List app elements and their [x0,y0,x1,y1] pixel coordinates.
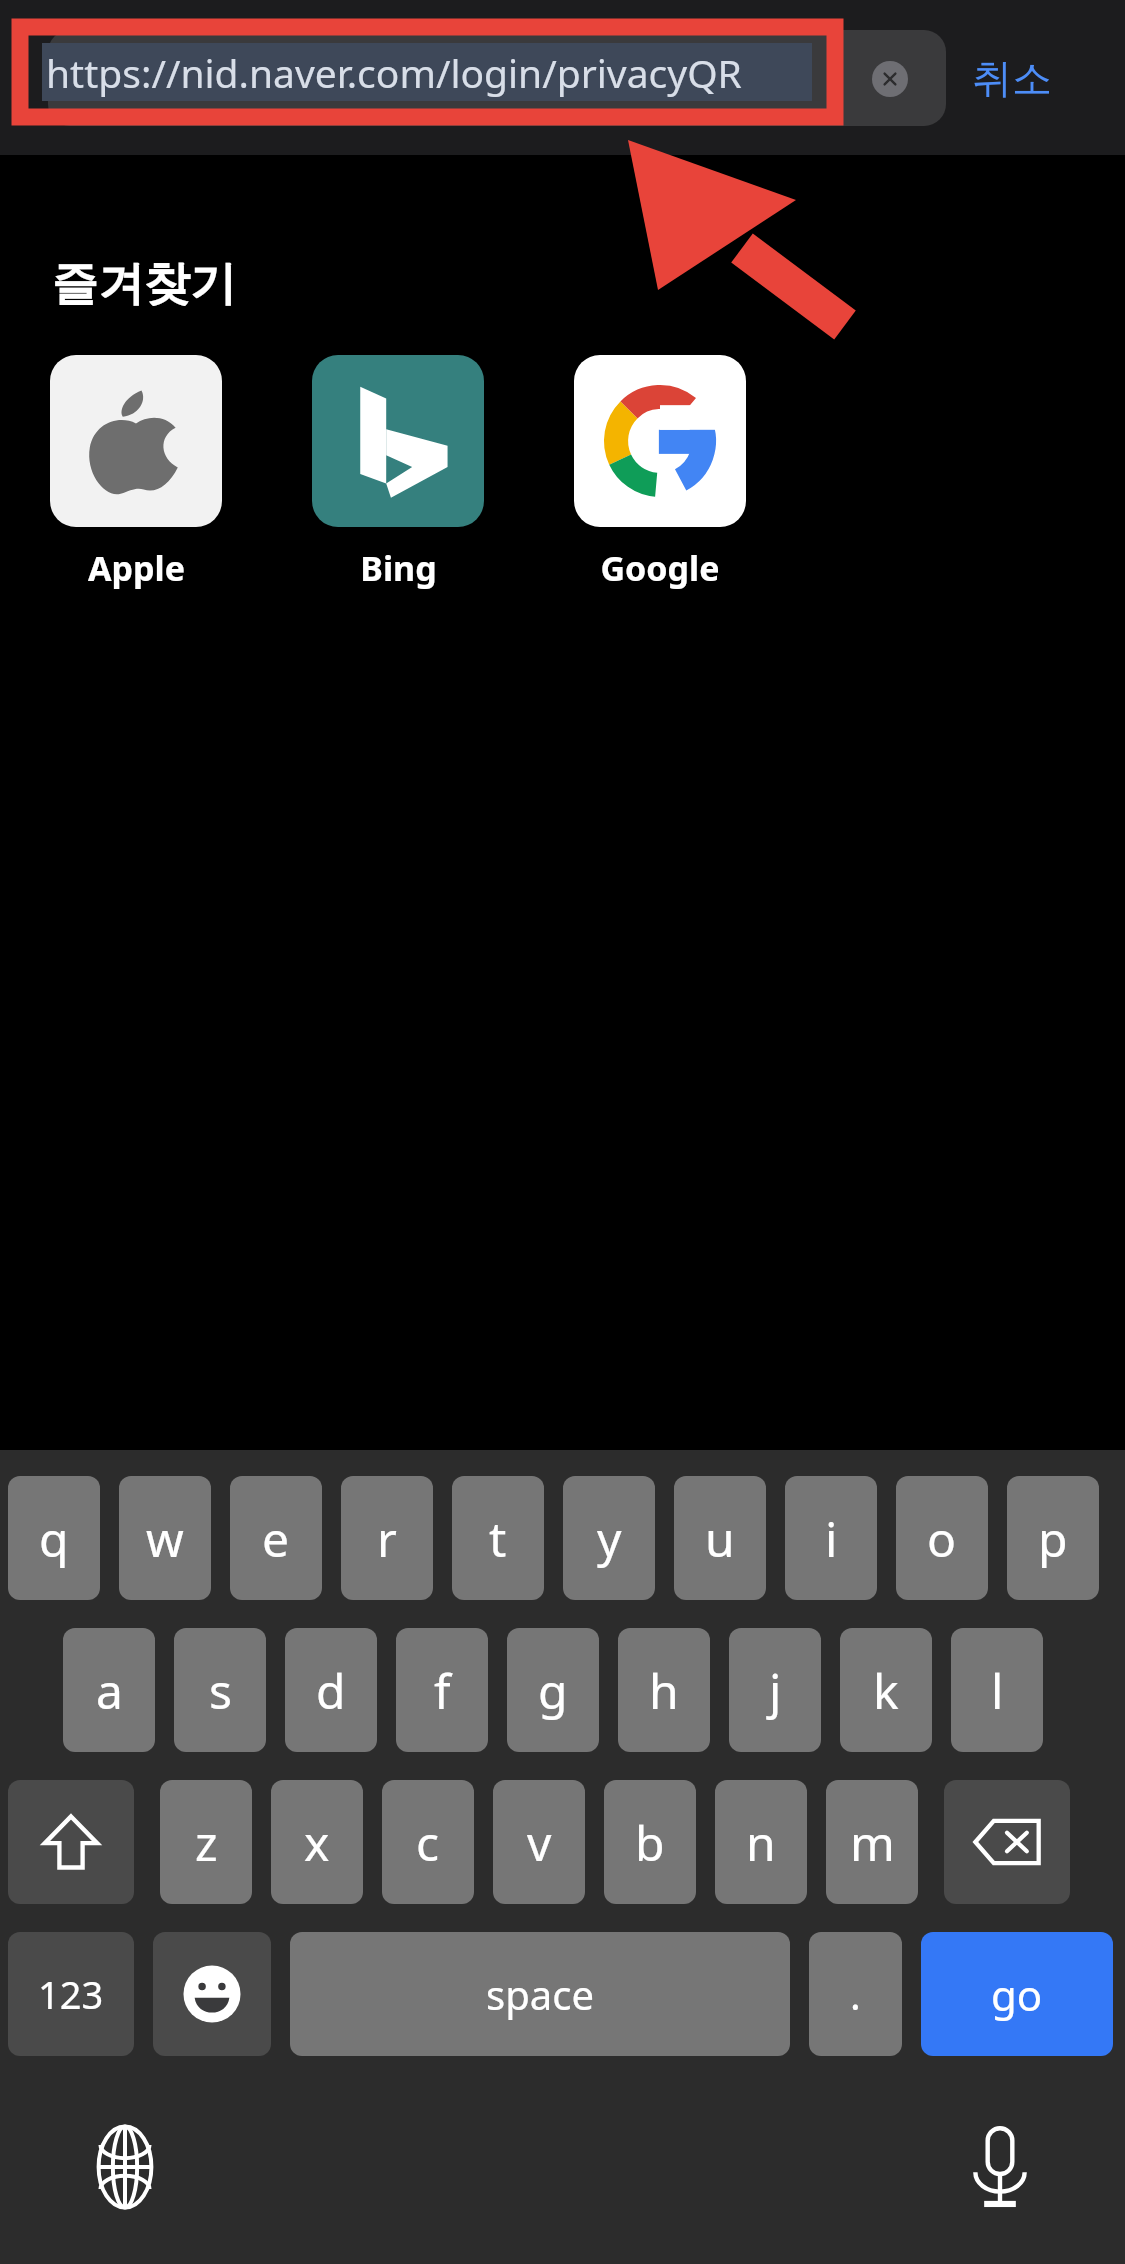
button[interactable]: a [63,1628,155,1752]
staticText: c [416,1810,440,1875]
staticText: s [209,1658,232,1723]
staticText: v [527,1810,552,1875]
staticText: e [262,1506,290,1571]
button[interactable]: 123 [8,1932,134,2056]
button[interactable]: space [290,1932,790,2056]
staticText: q [39,1506,69,1571]
button[interactable]: s [174,1628,266,1752]
staticText: 즐겨찾기 [52,255,236,313]
staticText: u [705,1506,735,1571]
staticText: m [850,1810,895,1875]
button[interactable]: Google [572,355,748,591]
staticText: f [434,1658,451,1723]
staticText: Google [600,545,720,591]
button[interactable]: Emoji [153,1932,271,2056]
button[interactable]: 취소 [972,36,1092,120]
staticText: i [825,1506,838,1571]
staticText: z [195,1810,218,1875]
button[interactable]: . [809,1932,902,2056]
button[interactable]: Bing [310,355,486,591]
button[interactable]: i [785,1476,877,1600]
staticText: go [991,1966,1043,2023]
button[interactable]: Apple [48,355,224,591]
button[interactable]: Backspace [944,1780,1070,1904]
button[interactable] [48,30,946,126]
staticText: . [850,1967,861,2021]
button[interactable]: k [840,1628,932,1752]
staticText: o [927,1506,957,1571]
staticText: 123 [38,1968,104,2020]
staticText: n [746,1810,776,1875]
button[interactable]: c [382,1780,474,1904]
staticText: x [304,1810,330,1875]
staticText: b [635,1810,665,1875]
button[interactable]: Clear text [872,61,908,97]
staticText: l [991,1658,1004,1723]
button[interactable]: p [1007,1476,1099,1600]
button[interactable]: y [563,1476,655,1600]
button[interactable]: g [507,1628,599,1752]
button[interactable]: d [285,1628,377,1752]
staticText: w [146,1506,184,1571]
button[interactable]: m [826,1780,918,1904]
button[interactable]: f [396,1628,488,1752]
staticText: https://nid.naver.com/login/privacyQR [46,46,742,99]
button[interactable]: v [493,1780,585,1904]
button[interactable]: Voice input [937,2104,1063,2230]
button[interactable]: j [729,1628,821,1752]
staticText: y [597,1506,622,1571]
button[interactable]: Change keyboard language [62,2104,188,2230]
button[interactable]: h [618,1628,710,1752]
staticText: r [377,1506,397,1571]
staticText: g [538,1658,568,1723]
button[interactable]: u [674,1476,766,1600]
staticText: a [96,1658,123,1723]
button[interactable]: n [715,1780,807,1904]
staticText: p [1038,1506,1068,1571]
button[interactable]: b [604,1780,696,1904]
staticText: h [649,1658,679,1723]
button[interactable]: r [341,1476,433,1600]
button[interactable]: t [452,1476,544,1600]
staticText: 취소 [972,53,1052,103]
button[interactable]: l [951,1628,1043,1752]
staticText: space [486,1967,594,2021]
staticText: Apple [88,545,185,591]
button[interactable]: Shift [8,1780,134,1904]
button[interactable]: q [8,1476,100,1600]
staticText: j [769,1658,782,1723]
staticText: t [489,1506,507,1571]
button[interactable]: z [160,1780,252,1904]
button[interactable]: o [896,1476,988,1600]
button[interactable]: x [271,1780,363,1904]
button[interactable]: go [921,1932,1113,2056]
staticText: k [873,1658,899,1723]
button[interactable]: e [230,1476,322,1600]
staticText: d [316,1658,346,1723]
button[interactable]: w [119,1476,211,1600]
staticText: Bing [360,545,437,591]
